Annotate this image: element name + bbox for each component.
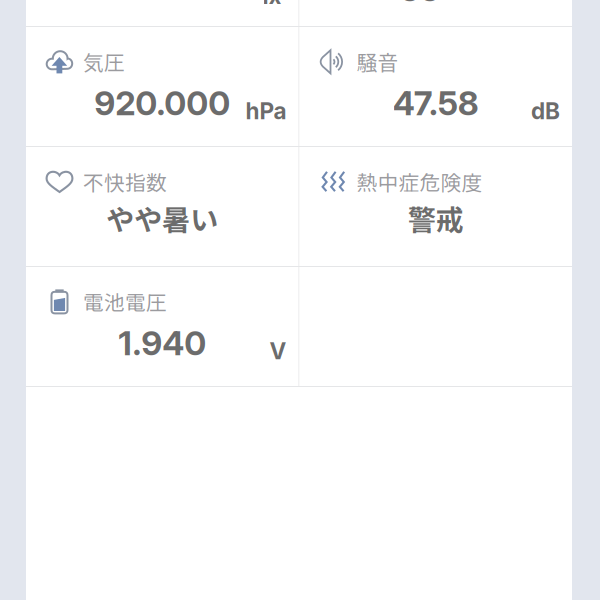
button[interactable]: 不快指数 bbox=[26, 147, 298, 266]
staticText: V bbox=[269, 337, 286, 365]
staticText: hPa bbox=[245, 97, 286, 125]
staticText: 920.000 bbox=[94, 83, 230, 123]
staticText: 警戒 bbox=[408, 198, 464, 238]
staticText: 気圧 bbox=[83, 46, 125, 76]
button[interactable]: 騒音 bbox=[299, 27, 572, 146]
staticText: dB bbox=[531, 97, 560, 125]
staticText: 熱中症危険度 bbox=[356, 166, 482, 196]
staticText: 47.58 bbox=[393, 83, 479, 123]
staticText: 55 bbox=[400, 0, 440, 9]
staticText: 電池電圧 bbox=[83, 286, 167, 316]
staticText: 1.940 bbox=[118, 323, 206, 363]
staticText: やや暑い bbox=[106, 198, 218, 238]
button[interactable]: 電池電圧 bbox=[26, 267, 298, 386]
staticText: 騒音 bbox=[356, 46, 398, 76]
staticText: lx bbox=[262, 0, 281, 10]
button[interactable]: 熱中症危険度 bbox=[299, 147, 572, 266]
button[interactable]: 気圧 bbox=[26, 27, 298, 146]
staticText: 不快指数 bbox=[83, 166, 167, 196]
